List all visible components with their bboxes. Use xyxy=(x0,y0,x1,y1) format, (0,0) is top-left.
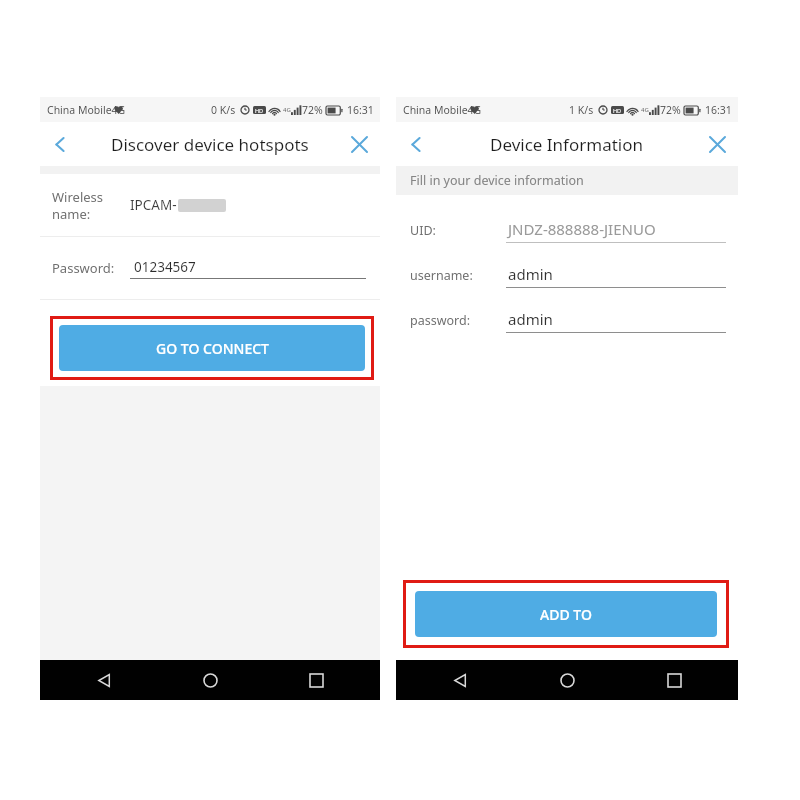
staticText: JNDZ-888888-JIENUO xyxy=(508,219,656,239)
staticText: 4G xyxy=(283,106,291,114)
staticText: 1 K/s xyxy=(569,103,594,117)
staticText: Discover device hotspots xyxy=(111,133,309,156)
button[interactable]: Close xyxy=(696,123,738,165)
button[interactable]: GO TO CONNECT xyxy=(59,325,365,371)
staticText: 72% xyxy=(302,103,323,117)
staticText: Password: xyxy=(52,259,130,277)
staticText: UID: xyxy=(410,222,506,239)
staticText: admin xyxy=(508,309,553,329)
button[interactable]: Back xyxy=(40,124,80,164)
staticText: IPCAM- xyxy=(130,196,177,214)
staticText: Fill in your device information xyxy=(410,172,584,189)
button[interactable]: Home xyxy=(194,664,226,696)
button[interactable]: Back xyxy=(88,664,120,696)
staticText: Device Information xyxy=(490,133,644,156)
staticText: 16:31 xyxy=(705,103,732,117)
button[interactable]: Recents xyxy=(300,664,332,696)
staticText: HD xyxy=(613,107,622,114)
staticText: 01234567 xyxy=(134,258,196,276)
staticText: China Mobile4G xyxy=(403,103,482,117)
staticText: 4G xyxy=(641,106,649,114)
staticText: 72% xyxy=(660,103,681,117)
staticText: GO TO CONNECT xyxy=(156,339,269,358)
button[interactable]: Home xyxy=(551,664,583,696)
staticText: username: xyxy=(410,267,506,284)
button[interactable]: ADD TO xyxy=(415,591,717,637)
button[interactable]: Back xyxy=(396,124,436,164)
button[interactable]: Close xyxy=(338,123,380,165)
staticText: Wireless name: xyxy=(52,188,130,223)
staticText: admin xyxy=(508,264,553,284)
button[interactable]: Recents xyxy=(658,664,690,696)
button[interactable]: Back xyxy=(444,664,476,696)
staticText: 16:31 xyxy=(347,103,374,117)
staticText: China Mobile4G xyxy=(47,103,126,117)
staticText: HD xyxy=(255,107,264,114)
staticText: ADD TO xyxy=(540,605,592,624)
staticText: 0 K/s xyxy=(211,103,236,117)
staticText: password: xyxy=(410,312,506,329)
